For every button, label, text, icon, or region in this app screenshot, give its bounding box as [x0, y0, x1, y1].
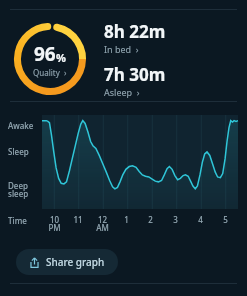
button[interactable]: 7h 30m: [104, 63, 166, 98]
button[interactable]: Sleep stages graph: [42, 115, 238, 209]
staticText: 11: [73, 214, 83, 225]
button[interactable]: Sleep quality 96 percent: [14, 23, 86, 95]
staticText: 7h 30m: [104, 63, 166, 86]
staticText: Time: [8, 215, 27, 226]
staticText: %: [56, 50, 66, 65]
staticText: 5: [223, 214, 228, 225]
staticText: Awake: [8, 120, 34, 131]
staticText: Share graph: [46, 255, 105, 269]
staticText: Deep sleep: [8, 180, 29, 199]
staticText: 1: [124, 214, 129, 225]
staticText: Quality ›: [33, 67, 67, 78]
staticText: 96: [34, 41, 56, 67]
staticText: 12 AM: [96, 214, 109, 233]
staticText: 4: [198, 214, 203, 225]
button[interactable]: Share graph: [16, 249, 118, 275]
staticText: 10 PM: [48, 214, 61, 233]
button[interactable]: 8h 22m: [104, 20, 166, 55]
staticText: 8h 22m: [104, 20, 166, 43]
staticText: Sleep: [8, 146, 29, 157]
staticText: 2: [148, 214, 153, 225]
staticText: In bed ›: [104, 43, 139, 55]
staticText: Asleep ›: [104, 86, 140, 98]
staticText: 3: [173, 214, 178, 225]
